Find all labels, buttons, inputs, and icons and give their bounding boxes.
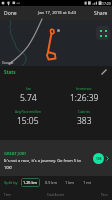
staticText: It's not a race, it's a journey. Go from… (4, 158, 90, 171)
button[interactable]: Share (90, 7, 112, 20)
staticText: Jan 17, 2018 at 6:43 (38, 10, 77, 16)
button[interactable]: 0.5 km (43, 178, 59, 187)
staticText: Time (4, 193, 11, 197)
staticText: Google (2, 60, 14, 65)
staticText: Pace (101, 193, 108, 197)
staticText: GREAT JOB! (4, 151, 26, 156)
staticText: 383 (77, 115, 92, 127)
button[interactable]: GREAT JOB! (0, 140, 112, 176)
button[interactable]: Calories (56, 110, 112, 127)
button[interactable]: 1 mi (81, 178, 93, 187)
staticText: hr:min:sec (76, 87, 92, 91)
staticText: 0.5 km (45, 180, 57, 185)
button[interactable]: 1 km (63, 178, 76, 187)
staticText: 1 mi (83, 180, 91, 185)
staticText: 5.74 (20, 92, 37, 104)
button[interactable]: Done (0, 7, 21, 20)
staticText: Done (4, 10, 17, 17)
button[interactable]: km (0, 87, 56, 104)
staticText: Avg Pace min/km (15, 110, 41, 114)
button[interactable]: hr:min:sec (56, 87, 112, 104)
staticText: Split by (4, 180, 18, 185)
staticText: Share (94, 10, 108, 17)
staticText: 10K (96, 157, 102, 161)
staticText: 17:20 (102, 1, 111, 6)
staticText: Calories (78, 110, 91, 114)
staticText: 1.25 km (23, 180, 38, 185)
staticText: 1:26:39 (70, 92, 99, 104)
button[interactable]: Expand map (96, 26, 110, 40)
button[interactable]: 1.25 km (21, 178, 40, 187)
staticText: 1 km (65, 180, 74, 185)
button[interactable]: Edit stats (99, 67, 109, 77)
staticText: Total Ascent (47, 193, 65, 197)
staticText: Stats (4, 69, 16, 75)
button[interactable]: Avg Pace min/km (0, 110, 56, 127)
staticText: km (26, 87, 31, 91)
staticText: 15:05 (17, 115, 39, 127)
